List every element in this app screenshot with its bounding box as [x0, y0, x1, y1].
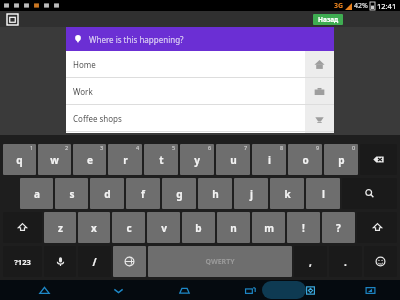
staticText: QWERTY	[205, 257, 235, 267]
button[interactable]: i	[252, 144, 286, 175]
staticText: 9	[316, 144, 320, 151]
staticText: Coffee shops	[73, 113, 122, 124]
button[interactable]: p	[324, 144, 358, 175]
staticText: 6	[208, 144, 212, 151]
staticText: 0	[352, 144, 356, 151]
button[interactable]: t	[144, 144, 178, 175]
staticText: l	[322, 187, 325, 201]
button[interactable]: d	[90, 178, 124, 209]
button[interactable]: y	[180, 144, 214, 175]
button[interactable]	[305, 105, 334, 131]
button[interactable]: l	[306, 178, 340, 209]
button[interactable]: shift	[357, 212, 397, 243]
button[interactable]: w	[38, 144, 71, 175]
staticText: i	[268, 153, 271, 167]
button[interactable]: Back	[0, 280, 88, 300]
button[interactable]: Where is this happening?	[66, 27, 334, 51]
button[interactable]: x	[78, 212, 110, 243]
staticText: 2	[65, 144, 69, 151]
button[interactable]: f	[126, 178, 160, 209]
staticText: k	[284, 187, 291, 201]
staticText: q	[16, 153, 23, 167]
button[interactable]: ?	[322, 212, 355, 243]
button[interactable]: k	[270, 178, 304, 209]
staticText: f	[141, 187, 145, 201]
button[interactable]: mic	[44, 246, 76, 277]
staticText: z	[58, 221, 63, 235]
staticText: b	[195, 221, 202, 235]
button[interactable]: r	[108, 144, 142, 175]
button[interactable]: c	[112, 212, 145, 243]
button[interactable]	[305, 51, 334, 77]
button[interactable]: s	[55, 178, 88, 209]
button[interactable]: z	[44, 212, 76, 243]
button[interactable]: QWERTY	[148, 246, 292, 277]
staticText: y	[194, 153, 200, 167]
button[interactable]: ,	[294, 246, 327, 277]
button[interactable]: del	[360, 144, 397, 175]
staticText: .	[344, 255, 347, 269]
staticText: r	[123, 153, 128, 167]
staticText: w	[50, 153, 59, 167]
button[interactable]: Apps	[280, 280, 340, 300]
button[interactable]: q	[3, 144, 36, 175]
staticText: 42%	[354, 1, 368, 11]
staticText: d	[104, 187, 111, 201]
staticText: ?	[336, 221, 341, 235]
staticText: n	[230, 221, 237, 235]
staticText: s	[69, 187, 75, 201]
staticText: j	[250, 187, 253, 201]
button[interactable]: !	[287, 212, 320, 243]
button[interactable]: b	[182, 212, 215, 243]
staticText: v	[161, 221, 167, 235]
staticText: 5	[172, 144, 176, 151]
button[interactable]: v	[147, 212, 180, 243]
staticText: 12:41	[377, 1, 397, 11]
staticText: u	[230, 153, 237, 167]
button[interactable]: Home	[148, 280, 220, 300]
staticText: e	[87, 153, 93, 167]
button[interactable]: Resize	[340, 280, 400, 300]
staticText: 8	[280, 144, 284, 151]
button[interactable]: m	[252, 212, 285, 243]
button[interactable]: Назад	[313, 14, 343, 25]
staticText: c	[126, 221, 132, 235]
button[interactable]: u	[216, 144, 250, 175]
button[interactable]: shift	[3, 212, 42, 243]
staticText: 3	[100, 144, 104, 151]
button[interactable]: Recents	[220, 280, 280, 300]
button[interactable]: ?123	[3, 246, 42, 277]
staticText: o	[302, 153, 309, 167]
staticText: /	[92, 255, 97, 269]
staticText: 4	[136, 144, 140, 151]
button[interactable]: search	[342, 178, 397, 209]
button[interactable]: j	[234, 178, 268, 209]
staticText: 3G	[334, 1, 344, 11]
staticText: 7	[244, 144, 248, 151]
staticText: t	[159, 153, 164, 167]
button[interactable]: h	[198, 178, 232, 209]
button[interactable]: /	[78, 246, 111, 277]
button[interactable]: g	[162, 178, 196, 209]
staticText: m	[264, 221, 274, 235]
button[interactable]: Home	[66, 51, 305, 77]
button[interactable]: o	[288, 144, 322, 175]
button[interactable]: Work	[66, 78, 305, 104]
staticText: p	[338, 153, 345, 167]
staticText: a	[34, 187, 40, 201]
button[interactable]	[305, 78, 334, 104]
staticText: Where is this happening?	[89, 34, 184, 45]
button[interactable]: a	[20, 178, 53, 209]
staticText: x	[91, 221, 97, 235]
staticText: 1	[30, 144, 34, 151]
button[interactable]: e	[73, 144, 106, 175]
button[interactable]: emoji	[364, 246, 397, 277]
button[interactable]: .	[329, 246, 362, 277]
staticText: Work	[73, 86, 93, 97]
button[interactable]: globe	[113, 246, 146, 277]
staticText: h	[212, 187, 219, 201]
button[interactable]: Coffee shops	[66, 105, 305, 131]
button[interactable]: Back	[6, 13, 19, 26]
button[interactable]: Hide keyboard	[88, 280, 148, 300]
button[interactable]: n	[217, 212, 250, 243]
